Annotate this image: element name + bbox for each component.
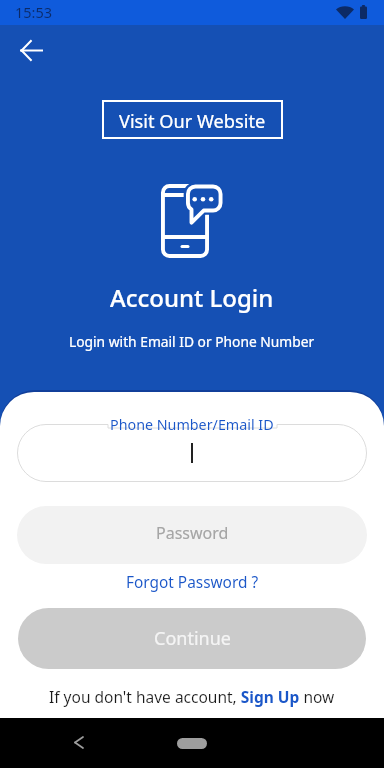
button[interactable]: Back xyxy=(62,726,95,759)
staticText: Continue xyxy=(154,626,231,651)
button[interactable]: Continue xyxy=(18,608,366,669)
staticText: 15:53 xyxy=(15,2,53,22)
button[interactable]: Forgot Password ? xyxy=(126,572,259,593)
button[interactable]: Back xyxy=(11,30,51,70)
staticText: Phone Number/Email ID xyxy=(110,415,274,434)
button[interactable]: Home xyxy=(177,738,207,749)
staticText: Forgot Password ? xyxy=(126,572,259,593)
staticText: If you don't have account, Sign Up now xyxy=(49,686,335,707)
button[interactable]: Password xyxy=(17,506,367,564)
staticText: Visit Our Website xyxy=(119,109,266,134)
staticText: Password xyxy=(156,522,229,544)
staticText: Login with Email ID or Phone Number xyxy=(69,332,315,351)
button[interactable]: Visit Our Website xyxy=(102,100,283,139)
button[interactable]: If you don't have account, Sign Up now xyxy=(49,686,335,707)
staticText: Account Login xyxy=(110,281,274,314)
